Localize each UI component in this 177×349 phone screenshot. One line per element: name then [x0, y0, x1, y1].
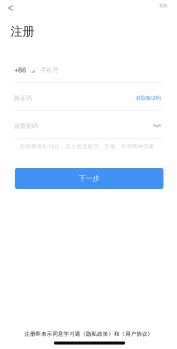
staticText: 密码要求8-16位，至少包含数字、字母、符号两种元素	[20, 143, 154, 150]
staticText: 下一步	[79, 174, 100, 183]
staticText: 设置密码	[14, 122, 38, 130]
staticText: 客服	[159, 3, 167, 8]
staticText: 注册即表示同意学习通《隐私政策》和《用户协议》	[24, 331, 153, 337]
staticText: 获取验证码	[136, 95, 161, 101]
staticText: 注册	[10, 24, 34, 39]
button[interactable]: Show password	[153, 123, 163, 128]
staticText: 验证码	[14, 94, 32, 102]
button[interactable]: Back	[3, 0, 18, 16]
button[interactable]: 客服	[155, 0, 171, 12]
staticText: 手机号	[40, 66, 58, 74]
staticText: +86	[14, 66, 26, 74]
button[interactable]: 获取验证码	[136, 95, 163, 101]
button[interactable]: 下一步	[15, 168, 163, 189]
